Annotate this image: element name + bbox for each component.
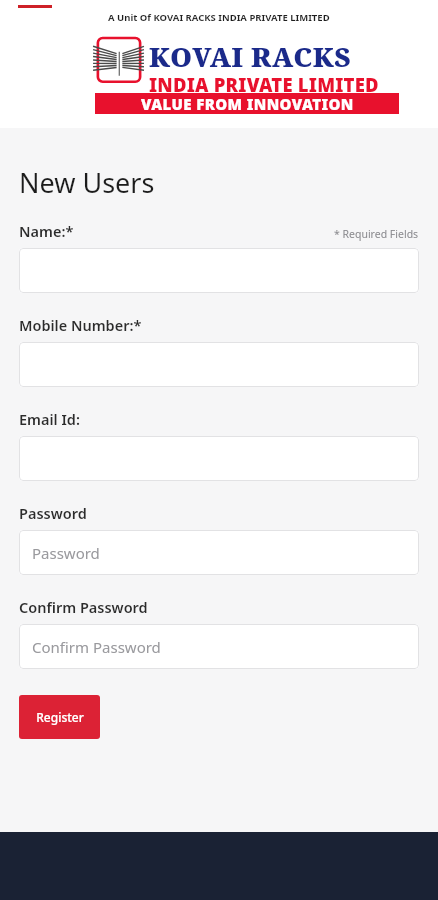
staticText: Password [32, 543, 100, 563]
staticText: Password [19, 503, 87, 523]
staticText: Confirm Password [19, 597, 148, 617]
staticText: New Users [19, 164, 155, 201]
button[interactable]: Text field [19, 342, 419, 387]
staticText: KOVAI RACKS [149, 38, 352, 75]
staticText: A Unit Of KOVAI RACKS INDIA PRIVATE LIMI… [108, 11, 330, 24]
staticText: Email Id: [19, 409, 80, 429]
staticText: INDIA PRIVATE LIMITED [149, 72, 379, 97]
button[interactable]: Text field [19, 436, 419, 481]
staticText: * Required Fields [334, 227, 419, 241]
staticText: Mobile Number:* [19, 315, 142, 335]
staticText: Confirm Password [32, 637, 161, 657]
button[interactable]: Password [19, 530, 419, 575]
button[interactable]: Register [19, 695, 100, 739]
button[interactable]: Confirm Password [19, 624, 419, 669]
staticText: VALUE FROM INNOVATION [141, 94, 354, 114]
button[interactable]: Text field [19, 248, 419, 293]
staticText: Register [36, 709, 84, 725]
staticText: Name:* [19, 221, 334, 241]
